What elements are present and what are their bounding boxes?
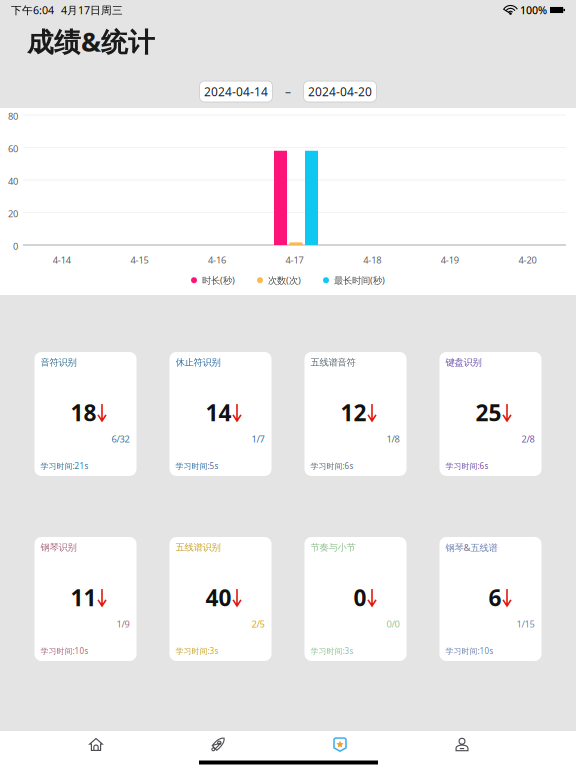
staticText: 60 <box>8 142 18 155</box>
button[interactable]: Home <box>35 737 157 751</box>
staticText: 五线谱识别 <box>175 542 220 553</box>
button[interactable]: 键盘识别 <box>439 352 541 476</box>
staticText: 学习时间:3s <box>175 646 218 656</box>
staticText: 4-17 <box>286 254 304 266</box>
staticText: 6/32 <box>111 433 129 445</box>
staticText: 1/8 <box>386 433 399 445</box>
staticText: 五线谱音符 <box>310 357 355 368</box>
staticText: 12 <box>340 397 366 427</box>
staticText: 学习时间:10s <box>445 646 493 656</box>
button[interactable]: 音符识别 <box>34 352 136 476</box>
staticText: 2/8 <box>521 433 534 445</box>
staticText: 14 <box>205 397 231 427</box>
staticText: 学习时间:6s <box>445 461 488 471</box>
staticText: 2024-04-20 <box>308 83 372 99</box>
staticText: 2/5 <box>251 618 264 630</box>
staticText: 时长(秒) <box>202 274 235 286</box>
button[interactable]: 2024-04-14 <box>199 81 272 102</box>
staticText: 学习时间:6s <box>310 461 353 471</box>
staticText: 1/9 <box>116 618 129 630</box>
button[interactable]: 节奏与小节 <box>304 537 406 661</box>
staticText: 4-16 <box>208 254 226 266</box>
staticText: 钢琴&五线谱 <box>445 541 497 554</box>
staticText: 25 <box>475 397 501 427</box>
staticText: 休止符识别 <box>175 357 220 368</box>
button[interactable]: Explore <box>157 737 279 751</box>
staticText: 18 <box>70 397 96 427</box>
button[interactable]: 钢琴&五线谱 <box>439 537 541 661</box>
staticText: 20 <box>8 207 18 220</box>
staticText: 下午6:04 <box>11 3 54 17</box>
staticText: 成绩&统计 <box>27 24 155 59</box>
button[interactable]: Achievements <box>279 737 401 751</box>
staticText: 0 <box>13 240 18 252</box>
staticText: 4月17日周三 <box>61 3 123 17</box>
button[interactable]: 钢琴识别 <box>34 537 136 661</box>
staticText: 学习时间:5s <box>175 461 218 471</box>
staticText: 0 <box>353 582 366 612</box>
staticText: 40 <box>8 175 18 187</box>
staticText: 4-20 <box>518 254 536 266</box>
staticText: 学习时间:21s <box>40 461 88 471</box>
button[interactable]: 五线谱识别 <box>169 537 271 661</box>
staticText: 4-15 <box>130 254 148 266</box>
staticText: 最长时间(秒) <box>334 274 385 286</box>
staticText: 0/0 <box>386 618 399 630</box>
staticText: 40 <box>205 582 231 612</box>
staticText: 2024-04-14 <box>204 83 268 99</box>
staticText: 1/15 <box>516 618 534 630</box>
staticText: 11 <box>70 582 96 612</box>
staticText: 学习时间:3s <box>310 646 353 656</box>
staticText: 节奏与小节 <box>310 542 355 553</box>
button[interactable]: 五线谱音符 <box>304 352 406 476</box>
staticText: – <box>285 83 291 99</box>
staticText: 钢琴识别 <box>40 542 76 553</box>
staticText: 80 <box>8 110 18 122</box>
staticText: 次数(次) <box>268 274 301 286</box>
staticText: 4-19 <box>441 254 459 266</box>
staticText: 1/7 <box>251 433 264 445</box>
staticText: 键盘识别 <box>445 357 481 368</box>
staticText: 学习时间:10s <box>40 646 88 656</box>
button[interactable]: 2024-04-20 <box>303 81 376 102</box>
staticText: 6 <box>488 582 501 612</box>
staticText: 100% <box>520 3 547 17</box>
button[interactable]: 休止符识别 <box>169 352 271 476</box>
staticText: 4-14 <box>53 254 71 266</box>
button[interactable]: Profile <box>401 737 523 751</box>
staticText: 4-18 <box>363 254 381 266</box>
staticText: 音符识别 <box>40 357 76 368</box>
